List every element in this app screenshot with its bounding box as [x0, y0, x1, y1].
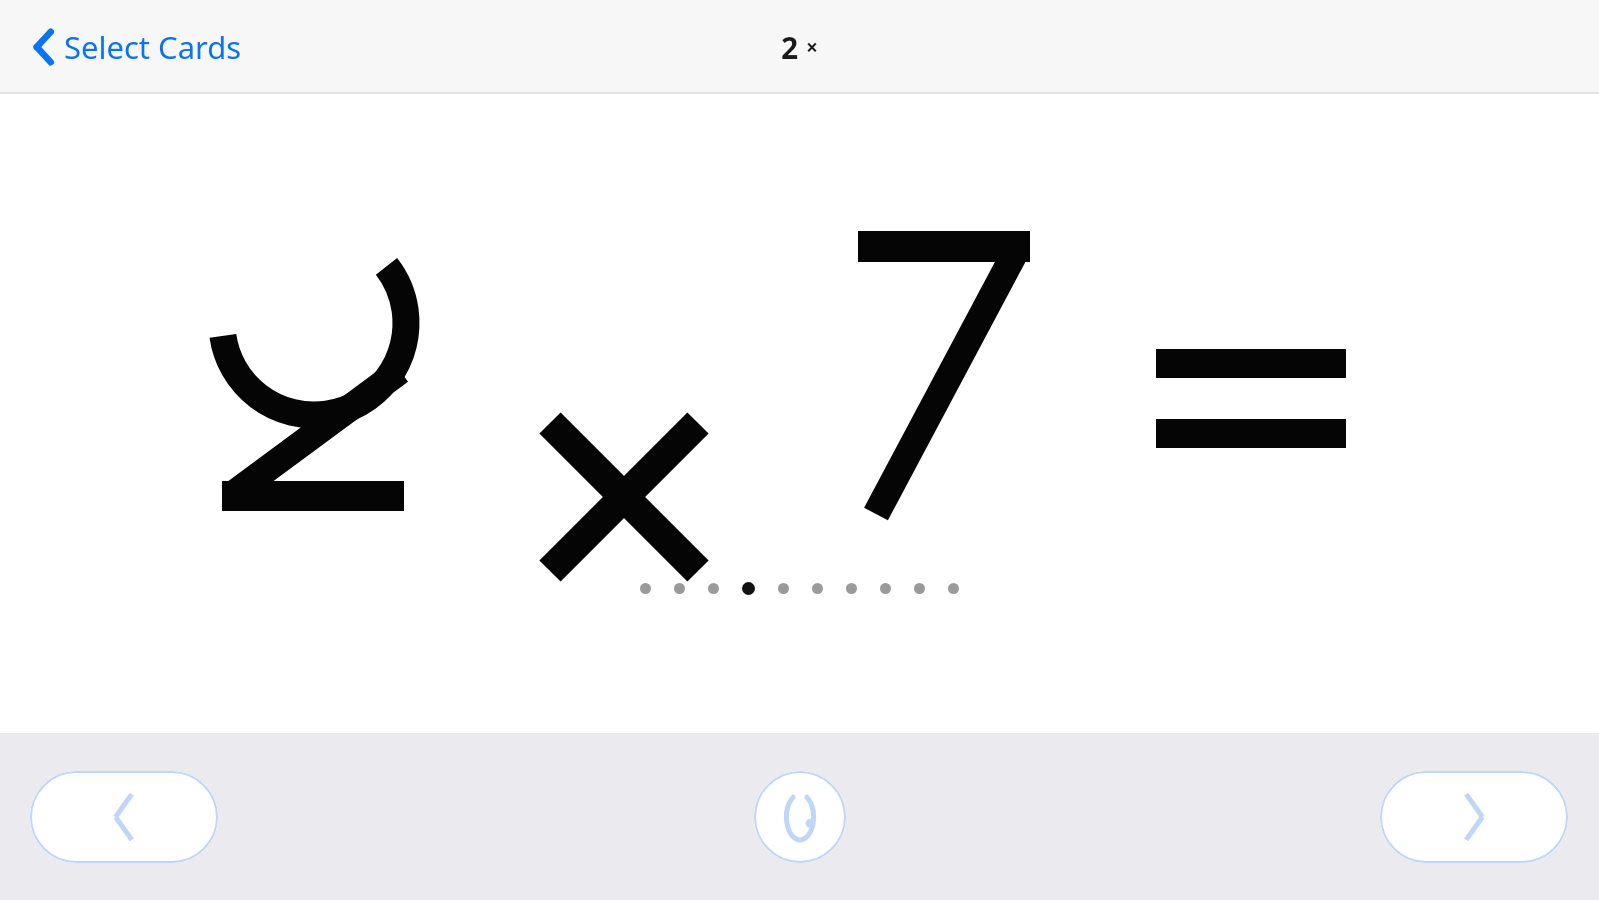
button[interactable]: Shuffle cards [754, 771, 846, 863]
staticText: 2 [781, 27, 799, 68]
staticText: Select Cards [64, 26, 242, 68]
button[interactable]: Next card [1380, 771, 1568, 863]
staticText: × [806, 33, 819, 62]
button[interactable]: Previous card [30, 771, 218, 863]
button[interactable]: Select Cards [22, 20, 250, 74]
